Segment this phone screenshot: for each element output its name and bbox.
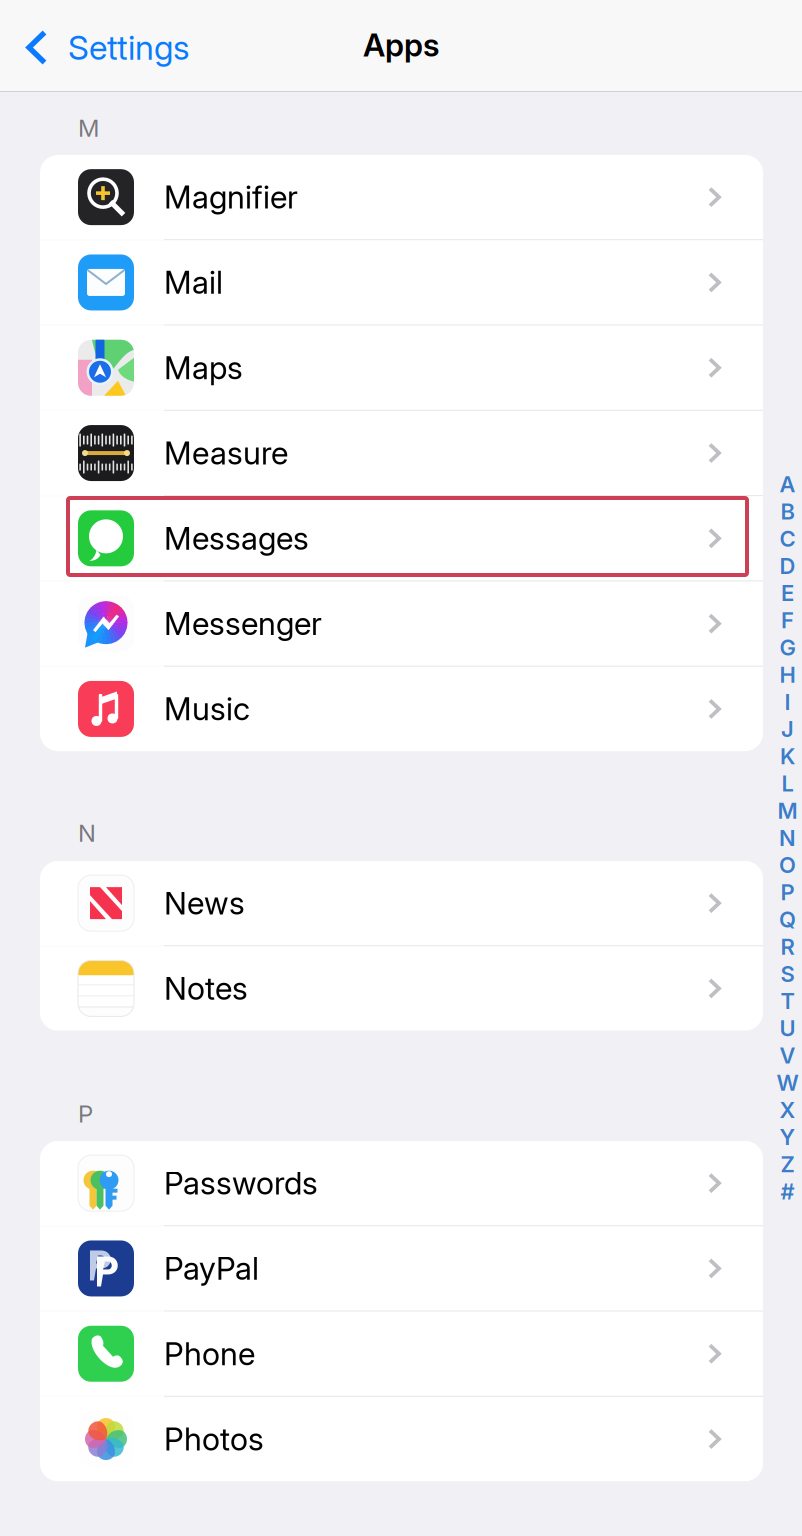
staticText: Messages — [164, 519, 309, 557]
staticText: Notes — [164, 969, 248, 1007]
staticText: R — [780, 933, 794, 960]
staticText: B — [780, 498, 794, 525]
button[interactable]: Messenger — [40, 581, 763, 666]
button[interactable]: Photos — [40, 1397, 763, 1481]
staticText: PayPal — [164, 1249, 259, 1287]
staticText: M — [777, 797, 797, 824]
staticText: N — [78, 819, 96, 848]
button[interactable]: Passwords — [40, 1141, 763, 1225]
staticText: Settings — [68, 27, 190, 68]
staticText: M — [78, 114, 99, 143]
staticText: Phone — [164, 1335, 255, 1373]
staticText: Magnifier — [164, 178, 298, 216]
staticText: H — [779, 661, 795, 688]
staticText: Measure — [164, 434, 288, 472]
button[interactable]: Mail — [40, 240, 763, 325]
staticText: A — [779, 471, 795, 498]
staticText: Mail — [164, 263, 223, 301]
staticText: O — [779, 852, 796, 878]
button[interactable]: Notes — [40, 946, 763, 1031]
staticText: Maps — [164, 349, 243, 387]
staticText: X — [779, 1097, 795, 1123]
staticText: Y — [779, 1124, 795, 1150]
staticText: K — [780, 743, 795, 770]
staticText: P — [78, 1099, 93, 1128]
staticText: J — [781, 716, 794, 742]
staticText: W — [776, 1069, 798, 1096]
staticText: Passwords — [164, 1164, 318, 1202]
staticText: T — [780, 988, 794, 1014]
staticText: I — [784, 689, 790, 715]
staticText: Apps — [363, 26, 439, 64]
button[interactable]: Settings — [0, 0, 196, 92]
button[interactable]: Section index — [775, 476, 799, 1200]
staticText: N — [779, 825, 796, 851]
staticText: C — [779, 525, 795, 552]
staticText: D — [779, 553, 795, 579]
staticText: E — [781, 580, 794, 606]
button[interactable]: Music — [40, 667, 763, 751]
button[interactable]: Maps — [40, 326, 763, 410]
staticText: S — [780, 961, 794, 987]
button[interactable]: PayPal — [40, 1226, 763, 1311]
button[interactable]: Phone — [40, 1312, 763, 1396]
button[interactable]: Magnifier — [40, 155, 763, 239]
staticText: # — [780, 1178, 794, 1205]
staticText: Photos — [164, 1420, 264, 1458]
staticText: Music — [164, 690, 250, 728]
button[interactable]: Messages — [40, 496, 763, 580]
staticText: G — [779, 634, 795, 661]
button[interactable]: Measure — [40, 411, 763, 495]
staticText: Z — [780, 1151, 794, 1178]
staticText: F — [781, 607, 794, 634]
staticText: L — [781, 770, 793, 797]
staticText: News — [164, 884, 245, 922]
staticText: U — [779, 1015, 795, 1042]
button[interactable]: News — [40, 861, 763, 945]
staticText: P — [780, 879, 794, 906]
staticText: Messenger — [164, 605, 322, 643]
staticText: Q — [779, 906, 796, 933]
staticText: V — [779, 1042, 795, 1069]
